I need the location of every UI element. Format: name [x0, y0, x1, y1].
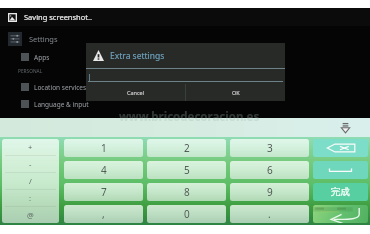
button[interactable]: 6 [230, 161, 309, 179]
staticText: - [29, 159, 32, 169]
button[interactable]: . [230, 205, 309, 223]
button[interactable]: Backspace [313, 139, 368, 157]
staticText: 1 [101, 141, 107, 155]
staticText: Settings [29, 34, 58, 44]
staticText: 8 [184, 185, 190, 199]
button[interactable]: 完成 [313, 183, 368, 201]
staticText: OK [232, 89, 240, 96]
staticText: @ [27, 210, 34, 220]
button[interactable]: 9 [230, 183, 309, 201]
button[interactable]: Location services [21, 79, 92, 95]
staticText: , [102, 207, 105, 221]
button[interactable]: Language & input [21, 96, 92, 112]
staticText: 完成 [331, 186, 350, 198]
staticText: www.bricodecoracion.es [119, 109, 260, 125]
button[interactable]: Settings [8, 30, 92, 48]
staticText: + [28, 142, 33, 152]
staticText: / [29, 176, 32, 186]
staticText: Apps [34, 53, 50, 62]
button[interactable]: Space [313, 161, 368, 179]
staticText: 6 [267, 163, 273, 177]
button[interactable]: 2 [147, 139, 226, 157]
button[interactable]: 3 [230, 139, 309, 157]
staticText: Location services [34, 83, 87, 92]
staticText: . [268, 207, 271, 221]
button[interactable]: 4 [64, 161, 143, 179]
staticText: 5 [184, 163, 190, 177]
staticText: PERSONAL [18, 68, 43, 75]
button[interactable]: 1 [64, 139, 143, 157]
staticText: : [29, 193, 32, 203]
staticText: Saving screenshot.. [24, 12, 92, 22]
staticText: 7 [101, 185, 107, 199]
button[interactable]: 5 [147, 161, 226, 179]
button[interactable]: 0 [147, 205, 226, 223]
staticText: 0 [184, 207, 190, 221]
button[interactable]: Enter [313, 205, 368, 223]
button[interactable]: 8 [147, 183, 226, 201]
button[interactable]: Apps [21, 49, 92, 65]
staticText: 2 [184, 141, 190, 155]
button[interactable]: 7 [64, 183, 143, 201]
staticText: Extra settings [110, 50, 165, 62]
staticText: 4 [101, 163, 107, 177]
button[interactable]: + [2, 139, 59, 223]
staticText: 3 [267, 141, 273, 155]
staticText: 9 [267, 185, 273, 199]
button[interactable]: OK [186, 84, 285, 101]
staticText: Cancel [127, 89, 145, 96]
staticText: Language & input [34, 100, 89, 109]
button[interactable]: Cancel [86, 84, 185, 101]
button[interactable]: Hide keyboard [339, 121, 352, 134]
button[interactable]: , [64, 205, 143, 223]
